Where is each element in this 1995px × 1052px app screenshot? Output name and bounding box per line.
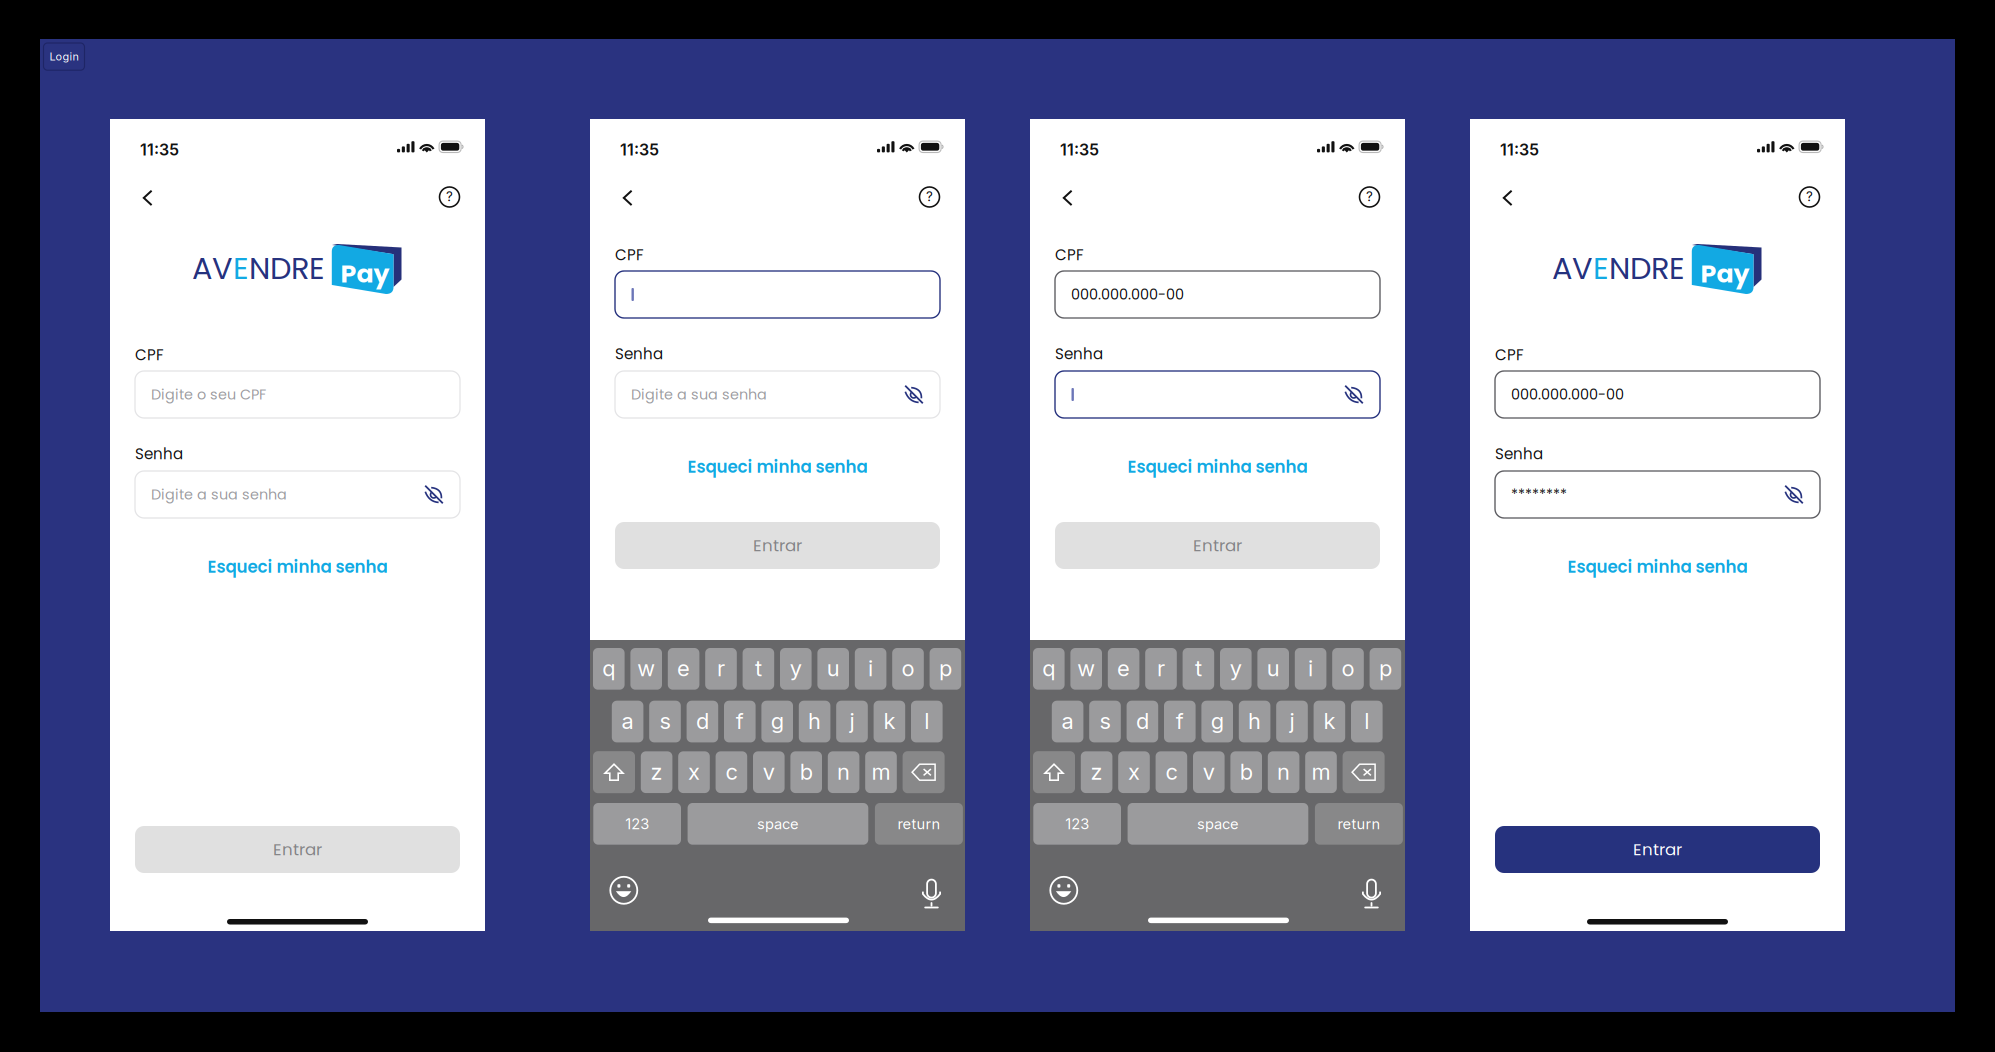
staticText: u [827, 655, 840, 682]
button[interactable]: k [874, 701, 905, 742]
button[interactable]: a [612, 701, 643, 742]
button[interactable]: s [1089, 701, 1121, 742]
button[interactable]: i [855, 648, 886, 690]
button[interactable]: b [1230, 751, 1262, 793]
button[interactable]: Apagar [903, 751, 945, 793]
button[interactable]: Voltar [1050, 181, 1084, 215]
staticText: y [1230, 655, 1242, 682]
button[interactable]: return [875, 803, 963, 845]
button[interactable]: z [641, 751, 672, 793]
button[interactable]: c [716, 751, 747, 793]
button[interactable]: 123 [593, 803, 681, 845]
button[interactable]: z [1081, 751, 1112, 793]
staticText: k [1323, 708, 1335, 734]
staticText: Digite a sua senha [151, 484, 287, 505]
button[interactable]: l [1351, 701, 1383, 742]
button[interactable]: c [1156, 751, 1187, 793]
button[interactable]: Ajuda [1792, 180, 1826, 214]
button[interactable]: d [687, 701, 718, 742]
button[interactable]: m [1305, 751, 1337, 793]
button[interactable]: Voltar [610, 181, 644, 215]
button[interactable]: h [799, 701, 830, 742]
button[interactable]: 123 [1033, 803, 1121, 845]
button[interactable]: Entrar [135, 826, 460, 873]
button[interactable]: k [1314, 701, 1345, 742]
button[interactable]: Login [43, 43, 84, 70]
button[interactable]: v [753, 751, 785, 793]
button[interactable]: s [649, 701, 681, 742]
button[interactable]: return [1315, 803, 1403, 845]
button[interactable]: e [668, 648, 699, 690]
button[interactable]: Emoji [1048, 874, 1080, 906]
button[interactable]: Apagar [1343, 751, 1385, 793]
button[interactable]: j [1276, 701, 1308, 742]
button[interactable]: o [892, 648, 924, 690]
button[interactable]: Entrar [615, 522, 940, 569]
button[interactable]: w [1070, 648, 1102, 690]
button[interactable]: Esqueci minha senha [1495, 554, 1820, 580]
button[interactable]: w [630, 648, 662, 690]
button[interactable]: g [761, 701, 793, 742]
staticText: p [1379, 655, 1392, 682]
button[interactable]: Ajuda [912, 180, 946, 214]
button[interactable]: e [1108, 648, 1139, 690]
button[interactable]: Ajuda [1352, 180, 1386, 214]
staticText: n [1277, 758, 1290, 785]
button[interactable]: n [828, 751, 859, 793]
button[interactable]: r [1145, 648, 1177, 690]
button[interactable]: t [1183, 648, 1214, 690]
button[interactable]: Esqueci minha senha [615, 454, 940, 480]
button[interactable]: r [705, 648, 737, 690]
staticText: 123 [1065, 815, 1089, 833]
button[interactable]: Voltar [1490, 181, 1524, 215]
button[interactable]: x [678, 751, 710, 793]
button[interactable]: Mostrar senha [898, 378, 930, 410]
button[interactable]: Entrar [1495, 826, 1820, 873]
staticText: return [1337, 815, 1380, 833]
button[interactable]: j [836, 701, 868, 742]
button[interactable]: Ditado [915, 873, 947, 905]
button[interactable]: Shift [593, 751, 635, 793]
button[interactable]: l [911, 701, 943, 742]
button[interactable]: u [1257, 648, 1289, 690]
button[interactable]: p [1370, 648, 1401, 690]
button[interactable]: Mostrar senha [1778, 478, 1810, 510]
button[interactable]: d [1127, 701, 1158, 742]
button[interactable]: a [1052, 701, 1083, 742]
button[interactable]: Esqueci minha senha [1055, 454, 1380, 480]
button[interactable]: space [1128, 803, 1308, 845]
button[interactable]: g [1201, 701, 1233, 742]
button[interactable]: u [817, 648, 849, 690]
staticText: space [757, 815, 799, 833]
button[interactable]: y [780, 648, 812, 690]
button[interactable]: t [743, 648, 774, 690]
button[interactable]: Entrar [1055, 522, 1380, 569]
button[interactable]: x [1118, 751, 1150, 793]
button[interactable]: f [724, 701, 756, 742]
button[interactable]: y [1220, 648, 1252, 690]
button[interactable]: Emoji [608, 874, 640, 906]
button[interactable]: space [688, 803, 868, 845]
button[interactable]: m [865, 751, 897, 793]
button[interactable]: f [1164, 701, 1196, 742]
button[interactable]: v [1193, 751, 1225, 793]
button[interactable]: o [1332, 648, 1364, 690]
button[interactable]: Ajuda [432, 180, 466, 214]
staticText: e [677, 655, 690, 682]
button[interactable]: Voltar [130, 181, 164, 215]
staticText: x [688, 758, 700, 785]
button[interactable]: Mostrar senha [1338, 378, 1370, 410]
button[interactable]: Ditado [1355, 873, 1387, 905]
button[interactable]: Esqueci minha senha [135, 554, 460, 580]
button[interactable]: n [1268, 751, 1299, 793]
button[interactable]: i [1295, 648, 1326, 690]
button[interactable]: Shift [1033, 751, 1075, 793]
button[interactable]: b [790, 751, 822, 793]
staticText: 11:35 [620, 140, 659, 159]
button[interactable]: q [593, 648, 625, 690]
staticText: i [868, 655, 873, 682]
button[interactable]: p [930, 648, 961, 690]
button[interactable]: h [1239, 701, 1270, 742]
button[interactable]: Mostrar senha [418, 478, 450, 510]
button[interactable]: q [1033, 648, 1065, 690]
